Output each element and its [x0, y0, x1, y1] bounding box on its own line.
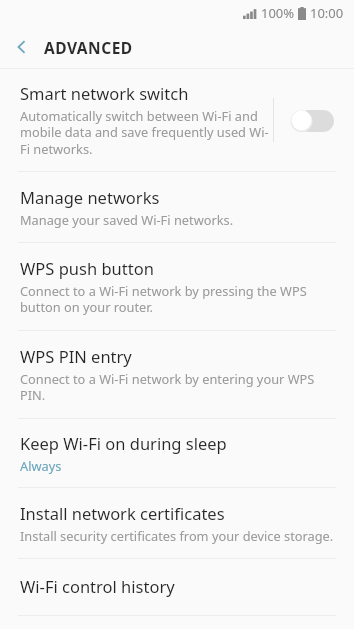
staticText: Connect to a Wi-Fi network by pressing t…: [20, 282, 340, 316]
staticText: WPS push button: [20, 257, 154, 279]
staticText: WPS PIN entry: [20, 345, 132, 367]
staticText: Keep Wi-Fi on during sleep: [20, 432, 227, 454]
staticText: ADVANCED: [44, 37, 133, 58]
staticText: Smart network switch: [20, 82, 189, 104]
button[interactable]: Smart network switch: [0, 69, 354, 171]
staticText: Always: [20, 457, 62, 474]
button[interactable]: Manage networks: [0, 172, 354, 242]
staticText: 100%: [261, 4, 295, 22]
staticText: Install network certificates: [20, 502, 225, 524]
staticText: Manage networks: [20, 186, 160, 208]
staticText: 10:00: [310, 4, 344, 22]
button[interactable]: Back: [0, 26, 44, 68]
staticText: Manage your saved Wi-Fi networks.: [20, 211, 234, 228]
button[interactable]: Smart network switch toggle: [290, 109, 334, 132]
staticText: Automatically switch between Wi-Fi and m…: [20, 107, 273, 158]
button[interactable]: Keep Wi-Fi on during sleep: [0, 419, 354, 487]
staticText: Wi-Fi control history: [20, 575, 175, 597]
button[interactable]: WPS PIN entry: [0, 331, 354, 418]
button[interactable]: Wi-Fi control history: [0, 559, 354, 615]
button[interactable]: Install network certificates: [0, 488, 354, 558]
button[interactable]: WPS push button: [0, 243, 354, 330]
staticText: Connect to a Wi-Fi network by entering y…: [20, 370, 340, 404]
staticText: Install security certificates from your …: [20, 527, 334, 544]
